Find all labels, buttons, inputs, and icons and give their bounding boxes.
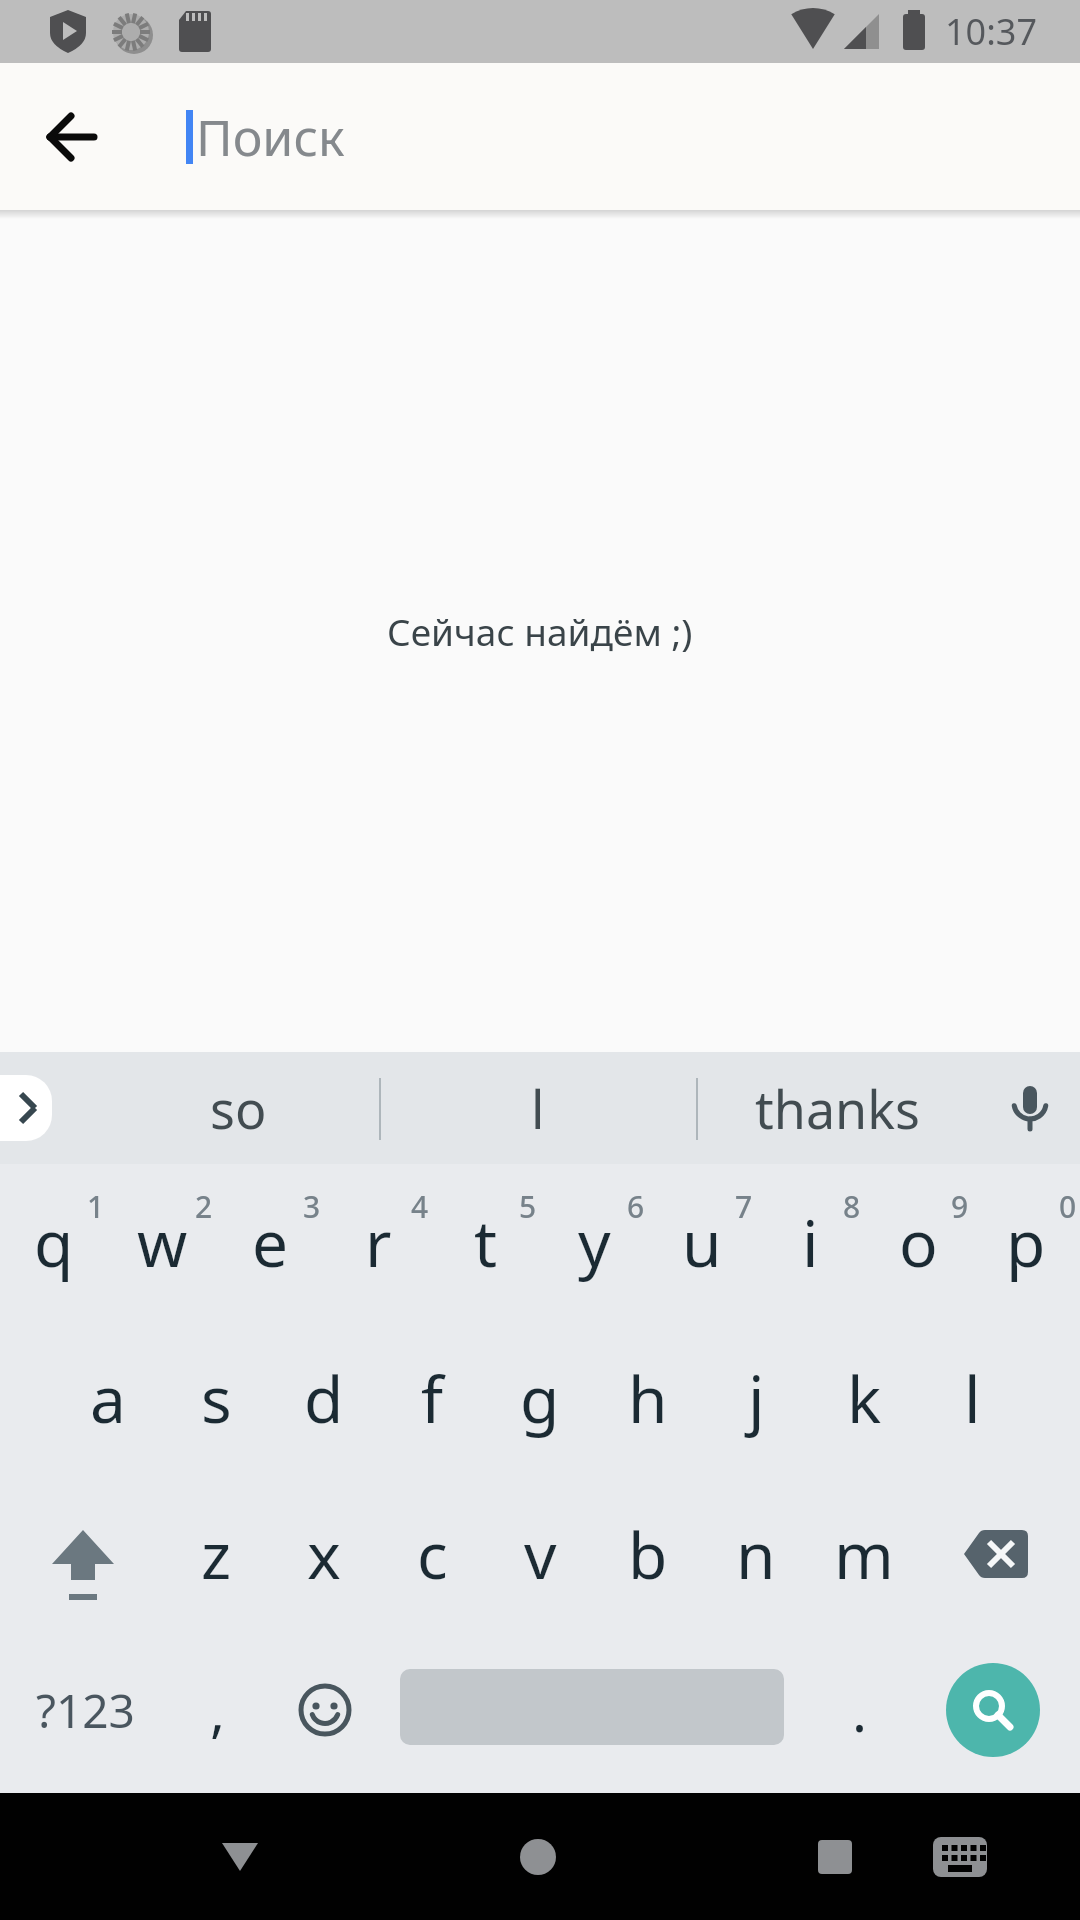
staticText: thanks bbox=[755, 1073, 920, 1144]
staticText: 10:37 bbox=[945, 7, 1038, 56]
staticText: z bbox=[201, 1511, 232, 1598]
button[interactable]: l bbox=[918, 1320, 1026, 1476]
button[interactable]: h bbox=[594, 1320, 702, 1476]
button[interactable] bbox=[38, 103, 106, 171]
staticText: q bbox=[34, 1199, 74, 1286]
button[interactable]: , bbox=[168, 1632, 268, 1788]
button[interactable] bbox=[980, 1058, 1080, 1158]
button[interactable] bbox=[0, 1075, 52, 1141]
staticText: 0 bbox=[1059, 1186, 1077, 1226]
staticText: j bbox=[748, 1355, 765, 1442]
staticText: l bbox=[531, 1073, 545, 1144]
button[interactable]: g bbox=[486, 1320, 594, 1476]
button[interactable]: s bbox=[162, 1320, 270, 1476]
staticText: g bbox=[520, 1355, 560, 1442]
button[interactable]: t bbox=[432, 1164, 540, 1320]
staticText: u bbox=[682, 1199, 722, 1286]
button[interactable]: d bbox=[270, 1320, 378, 1476]
staticText: . bbox=[852, 1672, 868, 1748]
button[interactable]: e bbox=[216, 1164, 324, 1320]
button[interactable]: i bbox=[756, 1164, 864, 1320]
staticText: m bbox=[834, 1511, 894, 1598]
staticText: t bbox=[474, 1199, 498, 1286]
staticText: k bbox=[847, 1355, 882, 1442]
button[interactable]: ?123 bbox=[10, 1632, 160, 1788]
button[interactable]: v bbox=[486, 1476, 594, 1632]
staticText: , bbox=[210, 1672, 226, 1748]
staticText: e bbox=[252, 1199, 289, 1286]
button[interactable] bbox=[921, 1476, 1071, 1632]
button[interactable]: x bbox=[270, 1476, 378, 1632]
button[interactable]: y bbox=[540, 1164, 648, 1320]
button[interactable]: c bbox=[378, 1476, 486, 1632]
staticText: l bbox=[964, 1355, 981, 1442]
button[interactable]: l bbox=[408, 1052, 668, 1164]
button[interactable]: n bbox=[702, 1476, 810, 1632]
button[interactable] bbox=[275, 1632, 375, 1788]
staticText: s bbox=[201, 1355, 232, 1442]
button[interactable]: Поиск bbox=[196, 103, 345, 171]
button[interactable]: thanks bbox=[707, 1052, 967, 1164]
button[interactable] bbox=[488, 1793, 588, 1920]
button[interactable]: q bbox=[0, 1164, 108, 1320]
staticText: v bbox=[524, 1511, 557, 1598]
staticText: so bbox=[210, 1073, 267, 1144]
staticText: 4 bbox=[411, 1186, 429, 1226]
button[interactable]: . bbox=[810, 1632, 910, 1788]
staticText: p bbox=[1006, 1199, 1046, 1286]
staticText: 1 bbox=[87, 1186, 105, 1226]
button[interactable]: z bbox=[162, 1476, 270, 1632]
staticText: 7 bbox=[735, 1186, 753, 1226]
staticText: 6 bbox=[627, 1186, 645, 1226]
staticText: h bbox=[628, 1355, 668, 1442]
button[interactable] bbox=[190, 1793, 290, 1920]
staticText: ?123 bbox=[36, 1679, 135, 1742]
staticText: a bbox=[90, 1355, 126, 1442]
staticText: 8 bbox=[843, 1186, 861, 1226]
button[interactable]: r bbox=[324, 1164, 432, 1320]
staticText: 9 bbox=[951, 1186, 969, 1226]
staticText: b bbox=[628, 1511, 668, 1598]
staticText: 5 bbox=[519, 1186, 537, 1226]
button[interactable]: a bbox=[54, 1320, 162, 1476]
staticText: d bbox=[304, 1355, 344, 1442]
staticText: f bbox=[421, 1355, 444, 1442]
button[interactable]: b bbox=[594, 1476, 702, 1632]
staticText: y bbox=[578, 1199, 611, 1286]
button[interactable] bbox=[8, 1476, 158, 1632]
staticText: o bbox=[899, 1199, 938, 1286]
staticText: x bbox=[307, 1511, 341, 1598]
staticText: 2 bbox=[195, 1186, 213, 1226]
button[interactable] bbox=[946, 1663, 1040, 1757]
button[interactable]: o bbox=[864, 1164, 972, 1320]
staticText: i bbox=[802, 1199, 819, 1286]
button[interactable] bbox=[785, 1793, 885, 1920]
button[interactable]: f bbox=[378, 1320, 486, 1476]
button[interactable]: w bbox=[108, 1164, 216, 1320]
button[interactable]: so bbox=[108, 1052, 368, 1164]
button[interactable] bbox=[910, 1793, 1010, 1920]
staticText: w bbox=[137, 1199, 188, 1286]
staticText: Сейчас найдём ;) bbox=[387, 606, 693, 656]
button[interactable]: j bbox=[702, 1320, 810, 1476]
staticText: c bbox=[417, 1511, 448, 1598]
staticText: 3 bbox=[303, 1186, 321, 1226]
button[interactable]: u bbox=[648, 1164, 756, 1320]
button[interactable]: k bbox=[810, 1320, 918, 1476]
button[interactable]: p bbox=[972, 1164, 1080, 1320]
staticText: r bbox=[365, 1199, 392, 1286]
button[interactable]: m bbox=[810, 1476, 918, 1632]
staticText: n bbox=[736, 1511, 776, 1598]
